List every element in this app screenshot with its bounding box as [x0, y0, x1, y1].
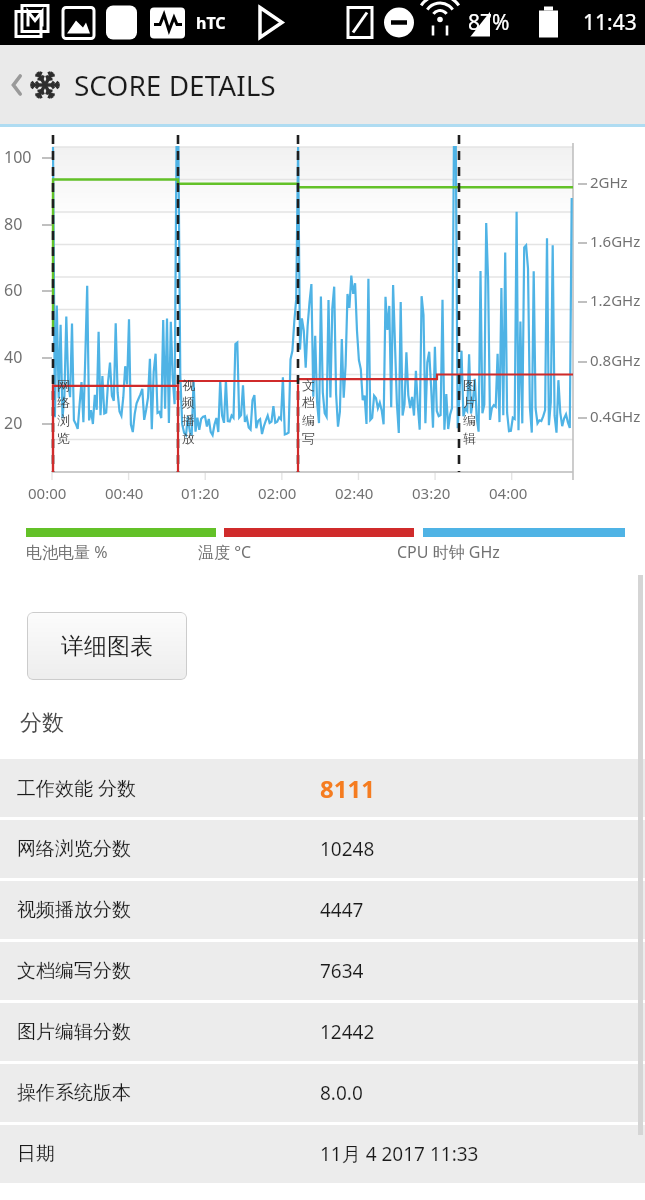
staticText: 操作系统版本: [17, 1081, 131, 1105]
button[interactable]: 日期: [0, 1125, 645, 1183]
staticText: 网络浏览: [57, 377, 73, 447]
staticText: 0.4GHz: [590, 406, 641, 426]
staticText: 温度 °C: [198, 541, 252, 563]
staticText: hTC: [196, 12, 226, 34]
staticText: 11:43: [583, 8, 637, 37]
staticText: 7634: [320, 958, 364, 984]
staticText: 8.0.0: [320, 1080, 363, 1106]
button[interactable]: 详细图表: [27, 612, 187, 680]
button[interactable]: Back: [0, 45, 645, 124]
staticText: 02:40: [335, 483, 374, 503]
staticText: 0.8GHz: [590, 350, 641, 370]
button[interactable]: 操作系统版本: [0, 1064, 645, 1122]
staticText: 03:20: [412, 483, 451, 503]
staticText: 文档编写: [302, 377, 318, 447]
staticText: 网络浏览分数: [17, 837, 131, 861]
staticText: 8111: [320, 772, 375, 805]
staticText: 4447: [320, 897, 364, 923]
staticText: 01:20: [181, 483, 220, 503]
staticText: 视频播放分数: [17, 898, 131, 922]
staticText: 10248: [320, 836, 375, 862]
button[interactable]: 网络浏览分数: [0, 820, 645, 878]
staticText: 图片编辑分数: [17, 1020, 131, 1044]
staticText: 00:00: [28, 483, 67, 503]
button[interactable]: 图片编辑分数: [0, 1003, 645, 1061]
button[interactable]: 文档编写分数: [0, 942, 645, 1000]
staticText: 02:00: [258, 483, 297, 503]
staticText: 详细图表: [61, 632, 153, 661]
staticText: 1.6GHz: [590, 231, 641, 251]
staticText: 87%: [468, 8, 510, 37]
staticText: 电池电量 %: [26, 541, 108, 563]
staticText: 11月 4 2017 11:33: [320, 1141, 479, 1167]
staticText: 2GHz: [590, 172, 628, 192]
staticText: 12442: [320, 1019, 375, 1045]
staticText: 60: [4, 279, 23, 301]
staticText: CPU 时钟 GHz: [397, 541, 500, 563]
staticText: 100: [4, 146, 32, 168]
staticText: 80: [4, 213, 23, 235]
staticText: 40: [4, 346, 23, 368]
staticText: 04:00: [489, 483, 528, 503]
button[interactable]: 视频播放分数: [0, 881, 645, 939]
staticText: 20: [4, 412, 23, 434]
staticText: 文档编写分数: [17, 959, 131, 983]
staticText: 视频播放: [182, 377, 198, 447]
button[interactable]: 工作效能 分数: [0, 759, 645, 817]
staticText: 1.2GHz: [590, 290, 641, 310]
staticText: 日期: [17, 1142, 55, 1166]
staticText: 00:40: [105, 483, 144, 503]
staticText: 工作效能 分数: [17, 775, 136, 801]
staticText: 图片编辑: [463, 377, 479, 447]
staticText: 分数: [20, 709, 64, 737]
staticText: SCORE DETAILS: [74, 66, 276, 104]
